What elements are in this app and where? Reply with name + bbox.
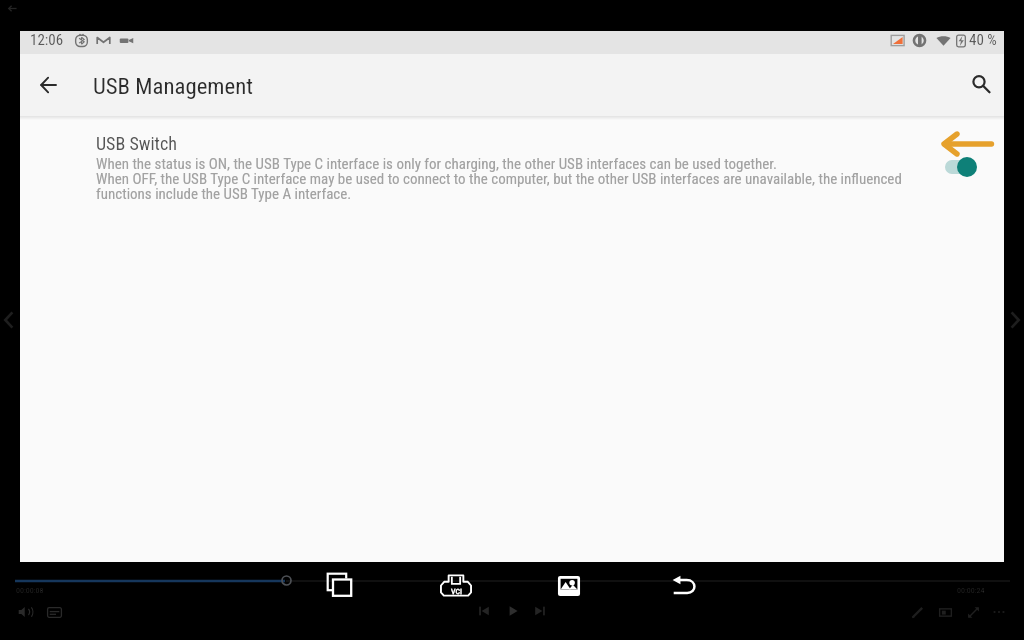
button[interactable]: Edit <box>906 601 928 623</box>
button[interactable]: VCI device <box>440 574 472 597</box>
button[interactable]: Play <box>503 601 523 621</box>
button[interactable] <box>20 116 1004 206</box>
button[interactable]: Volume <box>14 601 36 623</box>
staticText: USB Management <box>93 73 253 100</box>
button[interactable]: Fullscreen <box>962 601 984 623</box>
button[interactable]: Previous <box>474 601 494 621</box>
button[interactable]: Next <box>530 601 550 621</box>
staticText: 00:00:08 <box>16 586 44 595</box>
button[interactable]: Screenshot <box>934 601 956 623</box>
button[interactable]: Back <box>667 569 701 603</box>
button[interactable]: Recent apps <box>322 569 356 603</box>
staticText: When the status is ON, the USB Type C in… <box>96 155 908 203</box>
staticText: 00:00:24 <box>957 586 985 595</box>
button[interactable]: Search <box>960 63 1004 107</box>
staticText: 12:06 <box>30 31 64 49</box>
button[interactable]: USB Switch toggle <box>940 153 988 181</box>
staticText: VCI <box>451 587 462 596</box>
staticText: 40 % <box>969 31 997 49</box>
button[interactable]: More options <box>988 601 1010 623</box>
button[interactable]: Gallery <box>552 569 586 603</box>
button[interactable]: Back <box>26 63 70 107</box>
button[interactable]: Subtitles <box>43 601 65 623</box>
other: Back <box>8 4 17 13</box>
staticText: USB Switch <box>96 133 177 154</box>
